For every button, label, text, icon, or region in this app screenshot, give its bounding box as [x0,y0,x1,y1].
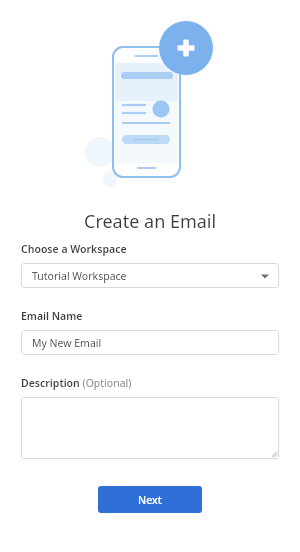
staticText: My New Email [32,336,102,350]
staticText: Choose a Workspace [21,242,127,256]
staticText: Create an Email [84,209,217,234]
button[interactable]: Next [98,486,202,513]
button[interactable]: Tutorial Workspace [21,263,279,288]
staticText: Next [138,493,162,507]
other: Open workspace list [261,272,269,280]
staticText: Description (Optional) [21,376,132,390]
button[interactable]: My New Email [21,330,279,355]
staticText: Email Name [21,309,83,323]
staticText: Tutorial Workspace [32,269,127,283]
button[interactable] [21,397,279,459]
